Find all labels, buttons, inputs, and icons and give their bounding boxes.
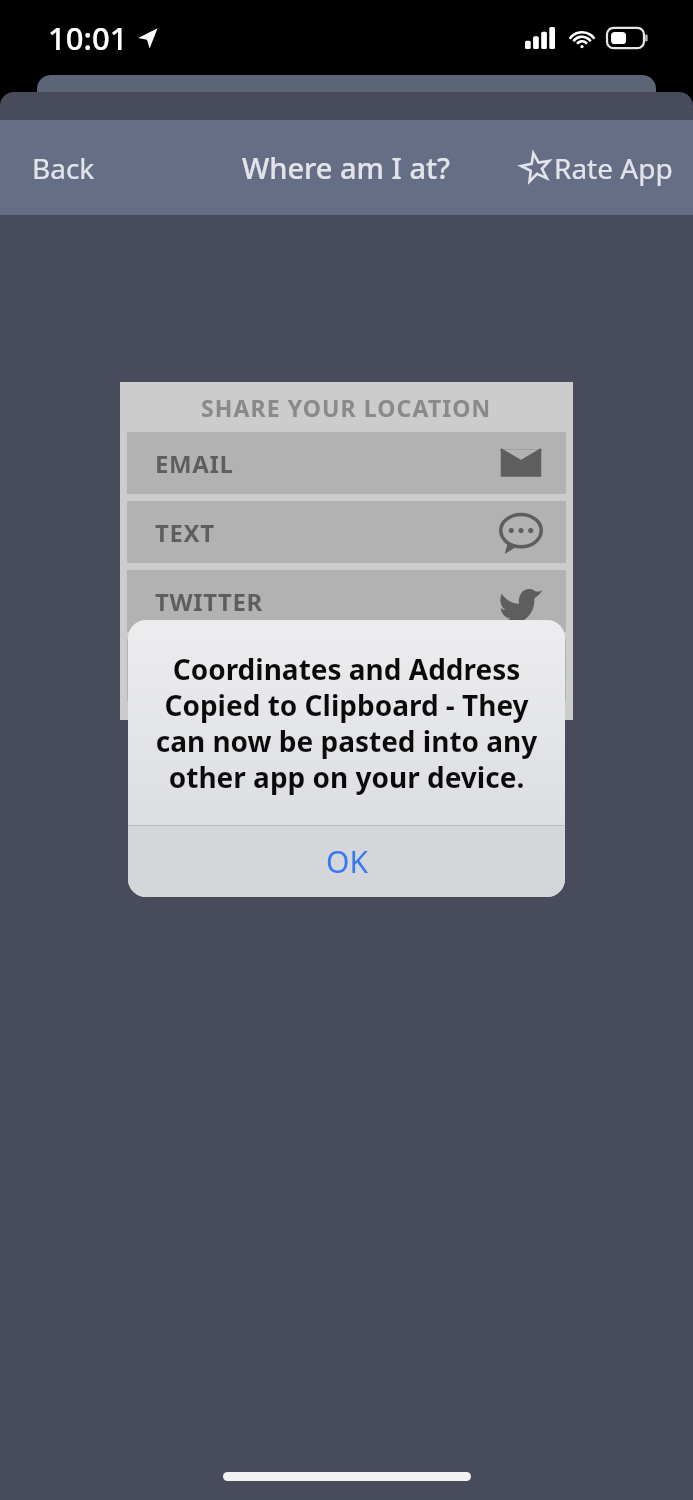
staticText: EMAIL [155,447,234,480]
button[interactable]: TEXT [127,501,566,563]
button[interactable]: EMAIL [127,432,566,494]
staticText: SHARE YOUR LOCATION [201,392,492,423]
staticText: Where am I at? [242,148,451,187]
staticText: 10:01 [48,17,128,59]
button[interactable] [127,639,566,701]
staticText: Rate App [554,149,673,187]
button[interactable]: OK [128,826,565,897]
button[interactable]: Rate App [511,141,683,195]
staticText: OK [326,841,368,882]
staticText: Back [32,149,95,187]
staticText: TEXT [155,516,215,549]
button[interactable]: Back [14,139,113,197]
staticText: Coordinates and Address Copied to Clipbo… [146,650,547,796]
staticText: TWITTER [155,585,263,618]
button[interactable]: TWITTER [127,570,566,632]
